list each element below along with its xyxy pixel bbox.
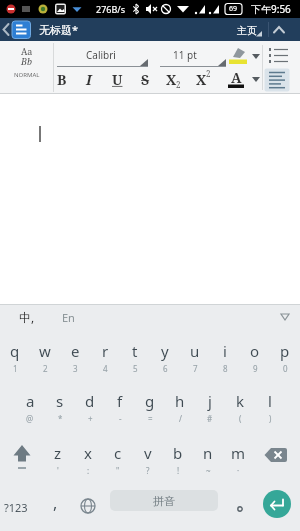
staticText: + xyxy=(88,413,93,424)
button[interactable]: r xyxy=(90,330,120,380)
staticText: , xyxy=(53,492,58,514)
staticText: Calibri xyxy=(86,48,116,62)
button[interactable]: , xyxy=(0,488,115,518)
button[interactable]: z xyxy=(43,432,73,482)
button[interactable]: Aa xyxy=(0,41,53,93)
button[interactable] xyxy=(267,18,300,41)
staticText: Bb xyxy=(21,55,32,67)
button[interactable]: o xyxy=(240,330,270,380)
staticText: i xyxy=(223,341,227,361)
staticText: 无标题* xyxy=(39,22,79,37)
staticText: 69 xyxy=(229,4,238,14)
staticText: h xyxy=(175,391,185,411)
button[interactable]: u xyxy=(180,330,210,380)
button[interactable]: 11 pt xyxy=(125,40,245,70)
button[interactable]: m xyxy=(223,432,253,482)
button[interactable] xyxy=(228,490,252,520)
staticText: y xyxy=(161,341,169,361)
staticText: ~ xyxy=(206,465,211,476)
staticText: t xyxy=(132,341,138,361)
staticText: z xyxy=(54,443,62,463)
button[interactable]: f xyxy=(105,380,135,430)
staticText: 下午9:56 xyxy=(251,2,291,16)
staticText: ? xyxy=(146,465,150,476)
staticText: 276B/s xyxy=(96,3,125,15)
staticText: X xyxy=(196,70,207,89)
button[interactable]: a xyxy=(15,380,45,430)
button[interactable]: X xyxy=(141,64,261,94)
staticText: 2 xyxy=(43,363,48,374)
button[interactable]: j xyxy=(195,380,225,430)
staticText: 0 xyxy=(283,363,288,374)
button[interactable]: g xyxy=(135,380,165,430)
staticText: 6 xyxy=(163,363,168,374)
staticText: 11 pt xyxy=(173,48,197,62)
staticText: " xyxy=(116,465,120,476)
staticText: 7 xyxy=(193,363,198,374)
button[interactable]: l xyxy=(255,380,285,430)
button[interactable]: Calibri xyxy=(41,40,161,70)
button[interactable]: s xyxy=(45,380,75,430)
staticText: * xyxy=(58,413,63,424)
button[interactable] xyxy=(263,490,291,518)
button[interactable] xyxy=(0,18,36,41)
staticText: 拼音 xyxy=(153,494,175,508)
staticText: / xyxy=(179,413,182,424)
staticText: - xyxy=(119,413,122,424)
button[interactable]: h xyxy=(165,380,195,430)
staticText: k xyxy=(236,391,245,411)
staticText: 中, xyxy=(19,309,35,325)
button[interactable]: U xyxy=(57,64,177,94)
button[interactable]: ?123 xyxy=(0,492,76,522)
staticText: d xyxy=(85,391,95,411)
staticText: # xyxy=(207,413,213,424)
button[interactable]: w xyxy=(30,330,60,380)
button[interactable]: S xyxy=(85,64,205,94)
button[interactable]: X xyxy=(111,64,231,94)
staticText: = xyxy=(148,413,153,424)
staticText: r xyxy=(102,341,109,361)
button[interactable]: b xyxy=(163,432,193,482)
staticText: b xyxy=(173,443,183,463)
staticText: m xyxy=(231,443,246,463)
button[interactable]: 主页 xyxy=(187,15,300,45)
staticText: p xyxy=(280,341,290,361)
button[interactable]: 中, xyxy=(0,302,87,332)
button[interactable]: v xyxy=(133,432,163,482)
button[interactable]: t xyxy=(120,330,150,380)
button[interactable]: 无标题* xyxy=(36,18,136,41)
button[interactable]: k xyxy=(225,380,255,430)
staticText: n xyxy=(203,443,213,463)
button[interactable]: c xyxy=(103,432,133,482)
staticText: 8 xyxy=(223,363,228,374)
button[interactable]: A xyxy=(176,62,296,92)
button[interactable]: e xyxy=(60,330,90,380)
staticText: 3 xyxy=(73,363,78,374)
button[interactable]: n xyxy=(193,432,223,482)
button[interactable]: x xyxy=(73,432,103,482)
staticText: ) xyxy=(269,413,272,424)
button[interactable] xyxy=(0,432,43,482)
staticText: l xyxy=(268,391,272,411)
staticText: 5 xyxy=(133,363,138,374)
button[interactable] xyxy=(74,488,102,526)
button[interactable]: q xyxy=(0,330,30,380)
button[interactable] xyxy=(253,432,300,482)
button[interactable]: 拼音 xyxy=(110,490,218,511)
button[interactable]: d xyxy=(75,380,105,430)
button[interactable]: i xyxy=(210,330,240,380)
staticText: ! xyxy=(177,465,180,476)
button[interactable]: y xyxy=(150,330,180,380)
button[interactable]: B xyxy=(2,64,122,94)
staticText: A xyxy=(231,68,242,87)
button[interactable]: En xyxy=(8,302,128,332)
staticText: 1 xyxy=(13,363,18,374)
staticText: v xyxy=(144,443,152,463)
staticText: B xyxy=(57,70,67,89)
staticText: s xyxy=(56,391,64,411)
button[interactable]: p xyxy=(270,330,300,380)
button[interactable]: I xyxy=(29,64,149,94)
staticText: e xyxy=(71,341,80,361)
staticText: 2 xyxy=(176,79,181,90)
staticText: o xyxy=(250,341,260,361)
